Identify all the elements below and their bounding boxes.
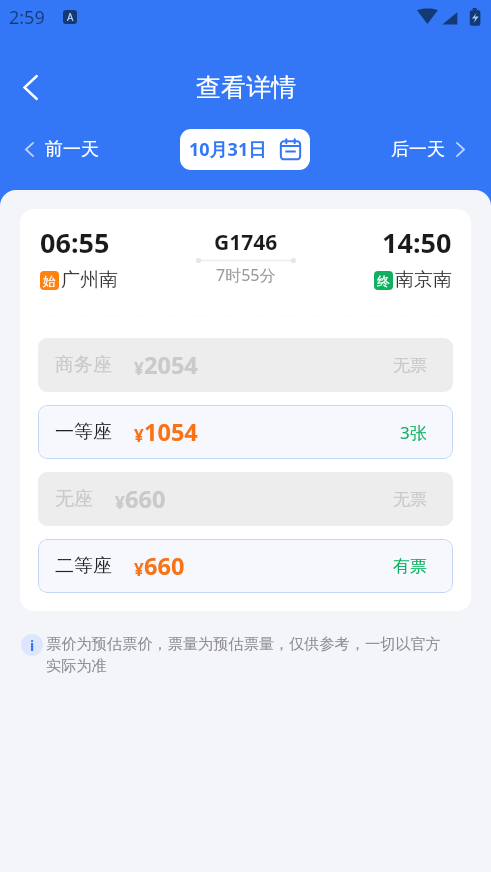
staticText: 始 bbox=[43, 273, 56, 289]
staticText: ¥ bbox=[134, 357, 144, 380]
staticText: 14:50 bbox=[382, 224, 452, 261]
button[interactable]: Back bbox=[10, 67, 50, 107]
staticText: 1054 bbox=[144, 416, 198, 448]
staticText: ¥ bbox=[134, 558, 144, 581]
staticText: 06:55 bbox=[40, 224, 110, 261]
staticText: 一等座 bbox=[55, 420, 112, 444]
staticText: 二等座 bbox=[55, 554, 112, 578]
staticText: 660 bbox=[125, 483, 166, 515]
staticText: 票价为预估票价，票量为预估票量，仅供参考，一切以官方 bbox=[46, 634, 441, 653]
staticText: 商务座 bbox=[55, 353, 112, 377]
staticText: 3张 bbox=[400, 421, 427, 444]
staticText: ¥ bbox=[134, 424, 144, 447]
button[interactable]: 前一天 bbox=[25, 132, 99, 167]
staticText: 终 bbox=[377, 273, 390, 289]
staticText: 10月31日 bbox=[189, 137, 267, 162]
button[interactable]: 二等座 bbox=[38, 539, 453, 593]
button[interactable]: 后一天 bbox=[391, 132, 465, 167]
staticText: 有票 bbox=[393, 556, 427, 577]
staticText: 南京南 bbox=[395, 268, 452, 292]
button[interactable]: 商务座 bbox=[38, 338, 453, 392]
staticText: 后一天 bbox=[391, 138, 445, 161]
staticText: 2054 bbox=[144, 349, 198, 381]
button[interactable]: 无座 bbox=[38, 472, 453, 526]
other: Status bbox=[417, 8, 482, 26]
staticText: 7时55分 bbox=[216, 264, 276, 286]
staticText: 无票 bbox=[393, 355, 427, 376]
button[interactable]: 10月31日 bbox=[180, 129, 310, 170]
staticText: 无票 bbox=[393, 489, 427, 510]
staticText: 查看详情 bbox=[196, 72, 296, 103]
staticText: 前一天 bbox=[45, 138, 99, 161]
staticText: A bbox=[67, 10, 74, 24]
staticText: 660 bbox=[144, 550, 185, 582]
staticText: 实际为准 bbox=[46, 656, 107, 675]
staticText: G1746 bbox=[214, 228, 278, 257]
staticText: ¥ bbox=[115, 491, 125, 514]
staticText: i bbox=[30, 636, 35, 655]
button[interactable]: 一等座 bbox=[38, 405, 453, 459]
staticText: 广州南 bbox=[61, 268, 118, 292]
other: Pick date bbox=[280, 139, 301, 160]
staticText: 无座 bbox=[55, 487, 93, 511]
staticText: 2:59 bbox=[9, 5, 45, 30]
